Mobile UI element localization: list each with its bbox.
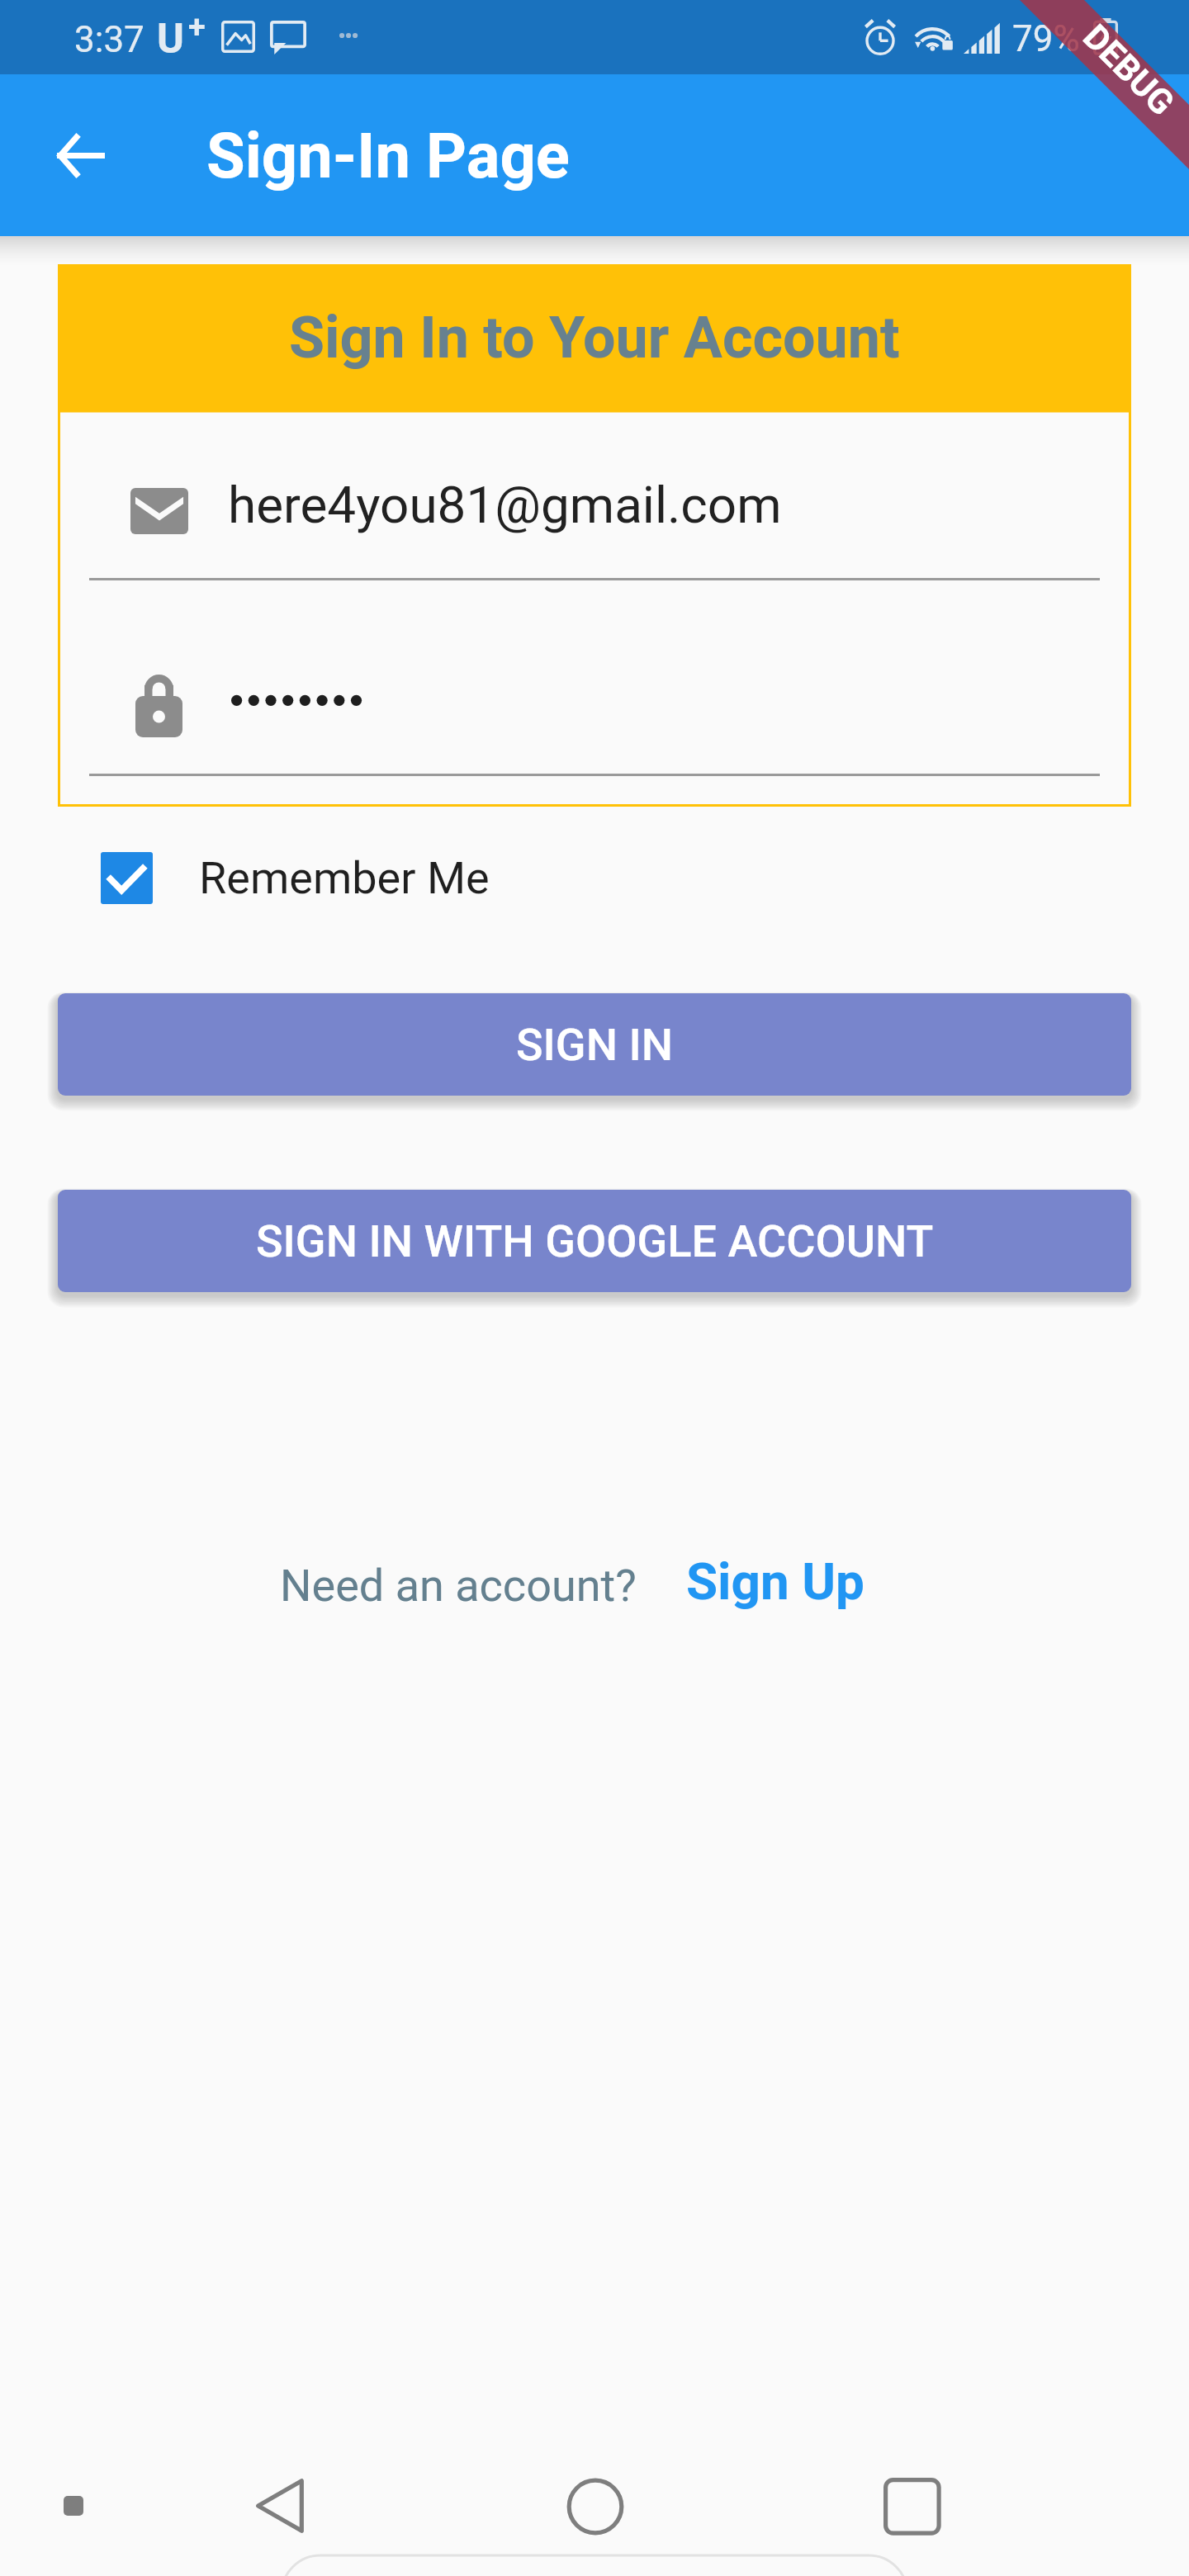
button[interactable]: Sign Up — [686, 1551, 865, 1612]
button[interactable]: Home — [545, 2456, 646, 2557]
button[interactable]: Back — [230, 2455, 330, 2556]
staticText: 3:37 — [74, 18, 144, 61]
button[interactable]: SIGN IN — [58, 993, 1131, 1096]
button[interactable]: Remember Me — [101, 848, 490, 907]
staticText: Need an account? — [280, 1560, 637, 1612]
button[interactable]: SIGN IN WITH GOOGLE ACCOUNT — [58, 1190, 1131, 1292]
staticText: Sign In to Your Account — [289, 304, 900, 372]
staticText: SIGN IN WITH GOOGLE ACCOUNT — [256, 1215, 934, 1267]
button[interactable]: Password field — [89, 624, 1100, 776]
staticText: + — [188, 9, 206, 46]
staticText: DEBUG — [1075, 16, 1182, 123]
button[interactable]: Back — [21, 96, 140, 215]
staticText: Remember Me — [199, 852, 490, 904]
staticText: U — [157, 15, 184, 64]
staticText: Sign Up — [686, 1551, 865, 1612]
staticText: Sign-In Page — [206, 119, 570, 192]
button[interactable]: Hide navigation bar — [64, 2496, 83, 2516]
button[interactable]: Email address field — [89, 429, 1100, 580]
staticText: here4you81@gmail.com — [228, 475, 782, 535]
staticText: SIGN IN — [516, 1019, 674, 1071]
button[interactable]: Recent apps — [862, 2456, 963, 2557]
staticText: 79% — [1012, 17, 1080, 60]
